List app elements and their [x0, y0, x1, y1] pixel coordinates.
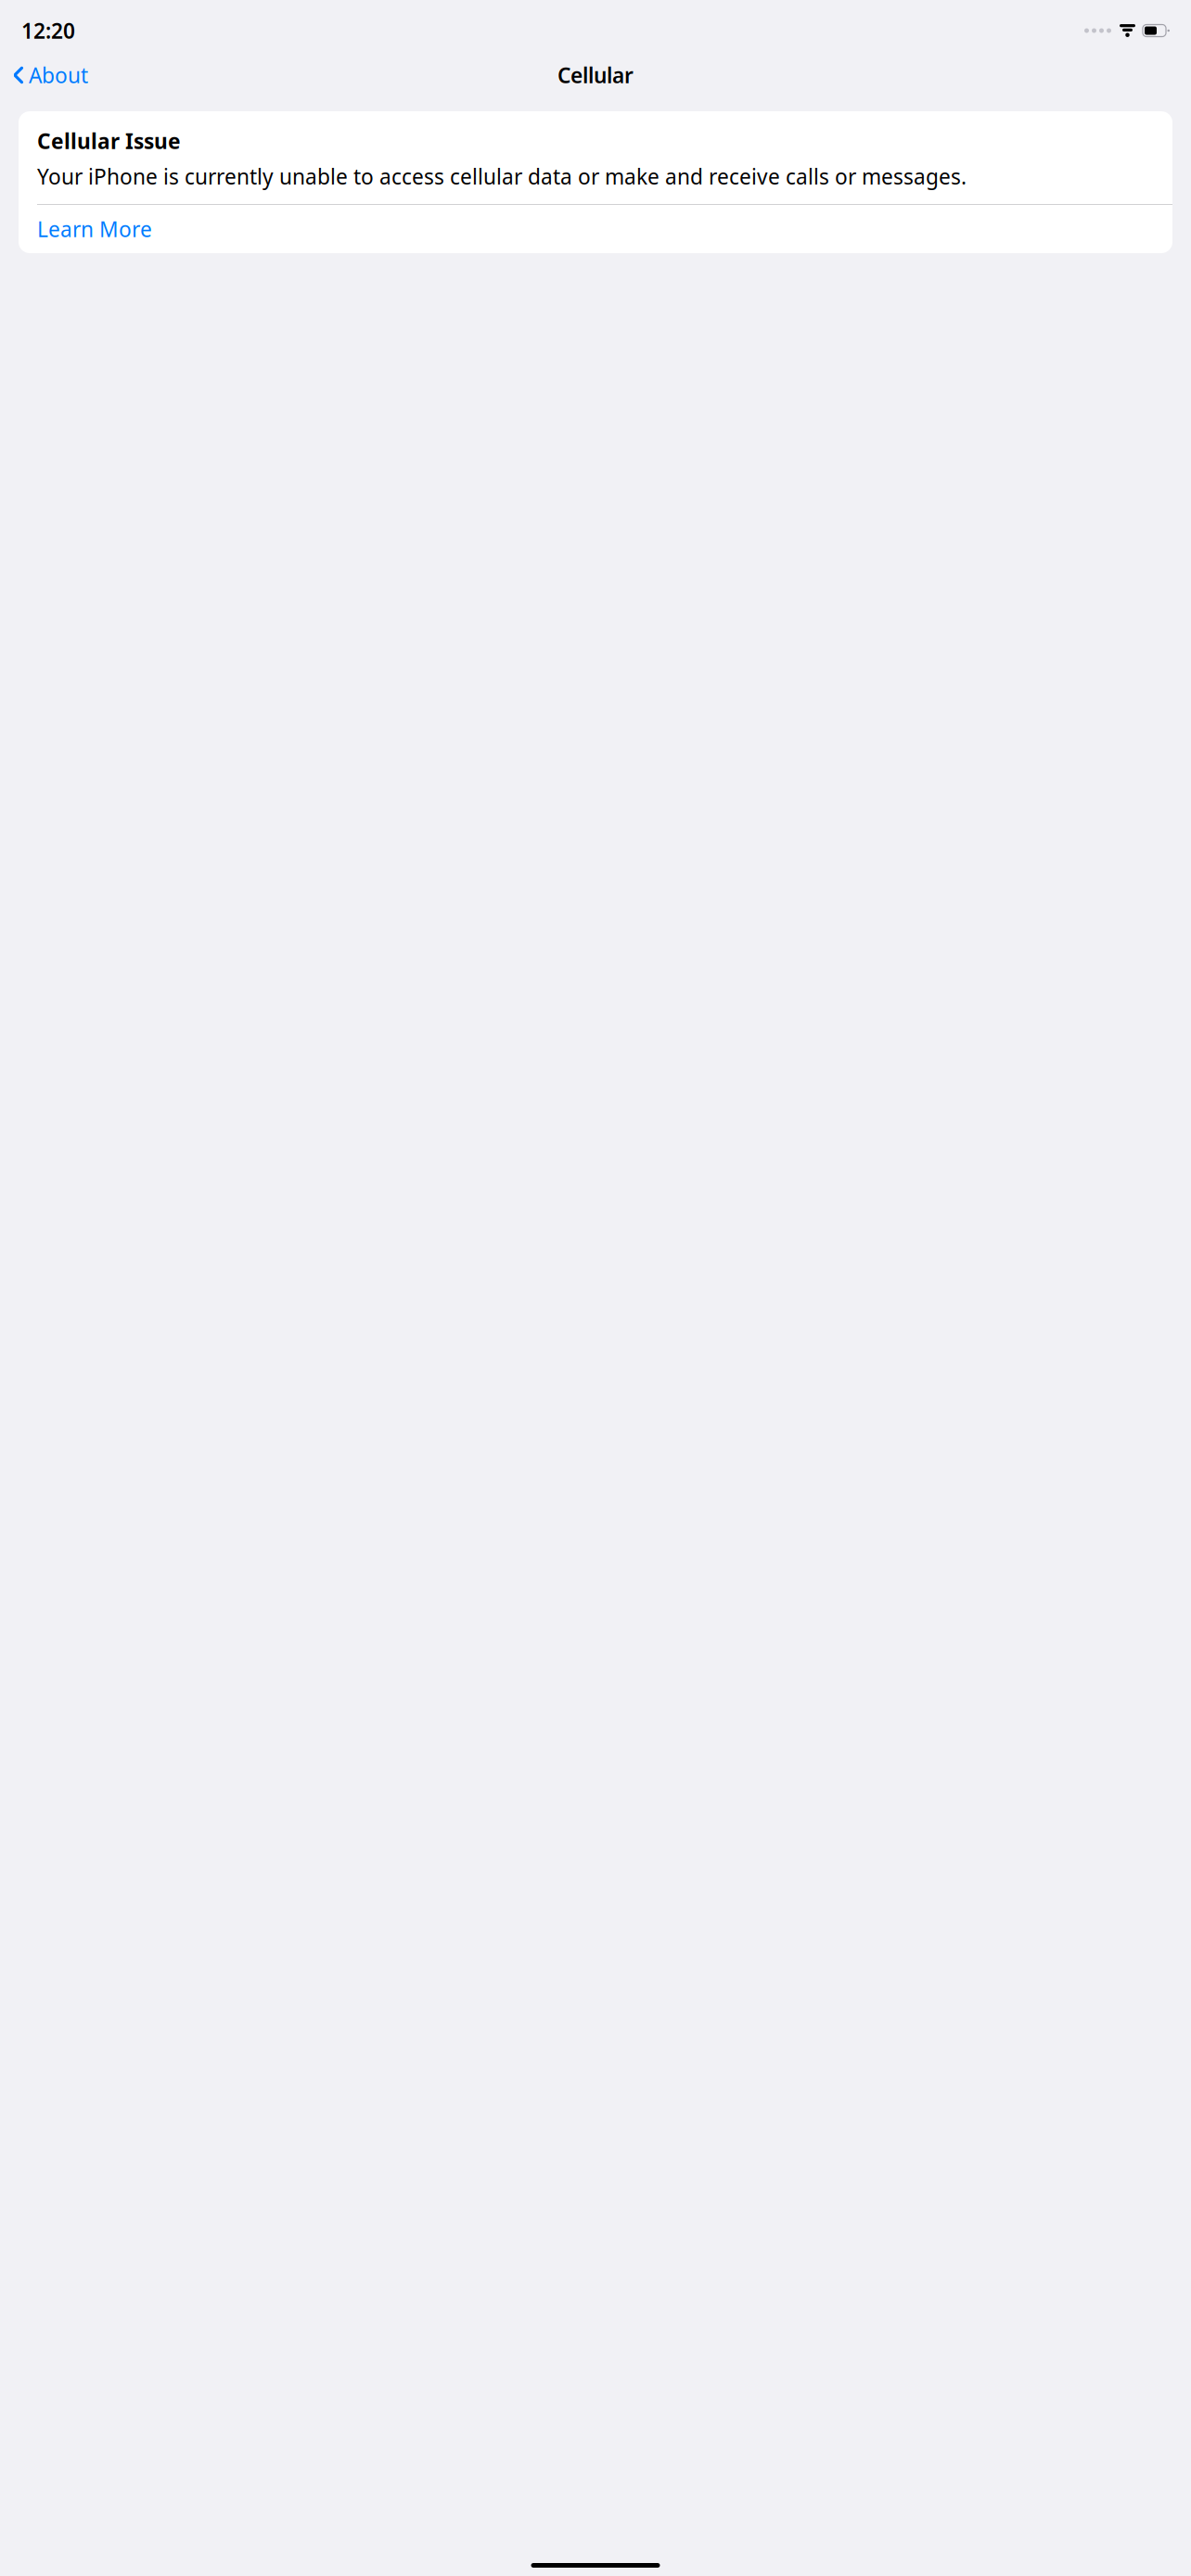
staticText: Cellular [557, 61, 634, 89]
staticText: Cellular Issue [37, 127, 181, 155]
staticText: About [29, 61, 88, 89]
staticText: 12:20 [21, 17, 75, 45]
button[interactable]: About [7, 53, 94, 97]
staticText: Learn More [37, 215, 152, 243]
staticText: Your iPhone is currently unable to acces… [37, 162, 967, 190]
button[interactable]: Learn More [19, 205, 1172, 253]
